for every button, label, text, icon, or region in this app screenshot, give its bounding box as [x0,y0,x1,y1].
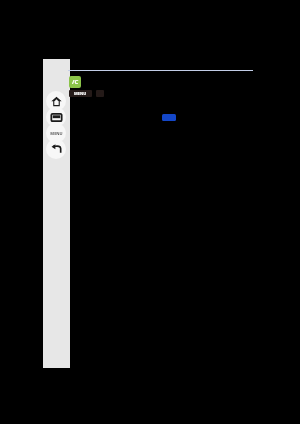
staticText: /C [72,78,79,86]
button[interactable]: Selection [162,114,176,121]
staticText: MENU [74,91,87,96]
button[interactable]: Display [46,107,66,127]
button[interactable]: App icon [69,76,81,88]
button[interactable]: Back [46,139,66,159]
button[interactable]: MENU [69,90,92,97]
button[interactable]: Home [46,91,66,111]
staticText: MENU [50,131,63,136]
button[interactable]: MENU [46,123,66,143]
